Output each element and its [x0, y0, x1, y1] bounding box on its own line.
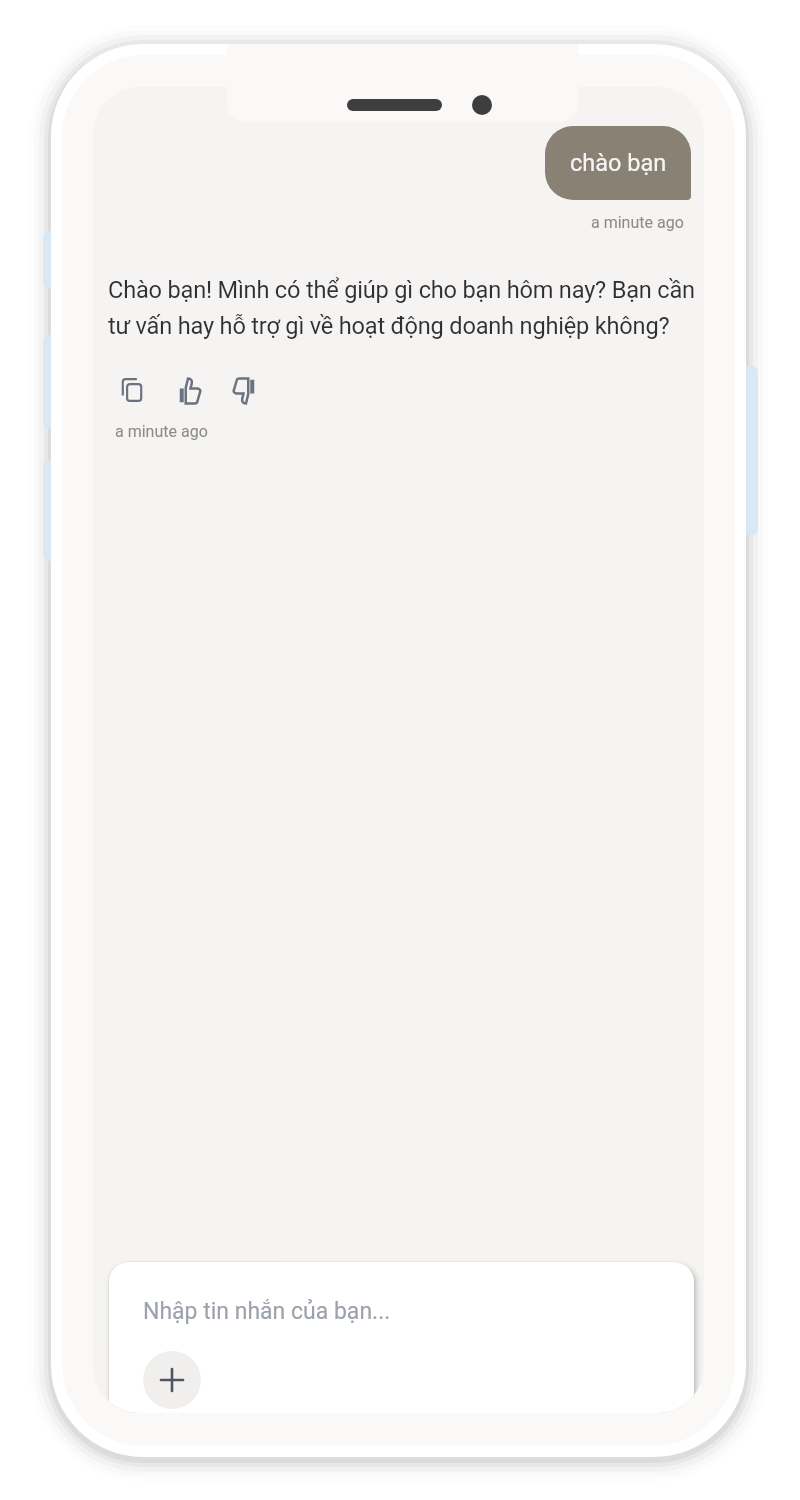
staticText: Chào bạn! Mình có thể giúp gì cho bạn hô… [108, 276, 704, 340]
button[interactable] [143, 1351, 201, 1409]
button[interactable] [231, 376, 261, 406]
staticText: Nhập tin nhắn của bạn... [143, 1298, 391, 1325]
staticText: chào bạn [570, 149, 667, 177]
button[interactable] [173, 376, 203, 406]
button[interactable] [119, 377, 145, 403]
staticText: a minute ago [115, 422, 208, 441]
button[interactable]: chào bạn [545, 126, 691, 200]
staticText: a minute ago [591, 213, 684, 232]
button[interactable]: Nhập tin nhắn của bạn... [109, 1262, 694, 1413]
